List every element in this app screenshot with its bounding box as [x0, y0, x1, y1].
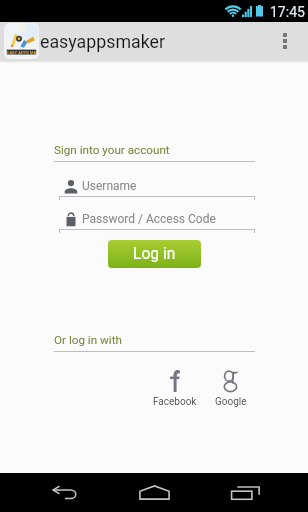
button[interactable]: Home: [130, 473, 178, 512]
button[interactable]: More options: [268, 22, 302, 60]
button[interactable]: Username: [59, 176, 255, 196]
staticText: Username: [82, 179, 137, 193]
button[interactable]: Google: [201, 370, 261, 408]
staticText: Sign into your account: [54, 143, 170, 157]
staticText: 17:45: [270, 4, 305, 20]
staticText: EASY APPS MAKER: [7, 50, 36, 55]
staticText: Facebook: [153, 396, 197, 408]
button[interactable]: Password / Access Code: [59, 209, 255, 229]
staticText: Or log in with: [54, 333, 122, 347]
staticText: easyappsmaker: [40, 31, 166, 52]
staticText: Log in: [133, 245, 176, 263]
button[interactable]: App icon: [4, 23, 39, 59]
button[interactable]: Recent apps: [221, 473, 269, 512]
staticText: Password / Access Code: [82, 212, 216, 226]
button[interactable]: Log in: [108, 240, 201, 268]
button[interactable]: Facebook: [145, 370, 205, 408]
staticText: Google: [215, 396, 247, 408]
button[interactable]: Back: [40, 473, 88, 512]
